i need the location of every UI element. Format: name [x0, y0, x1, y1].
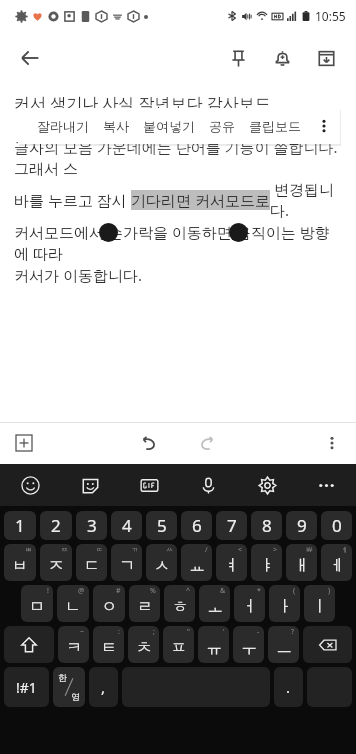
button[interactable]: -	[233, 626, 264, 663]
staticText: 2	[51, 514, 61, 537]
button[interactable]: Reminder	[260, 36, 304, 80]
staticText: ㄴ	[65, 597, 81, 617]
staticText: 기다리면 커서모드로	[131, 190, 270, 210]
staticText: %	[150, 586, 156, 596]
staticText: >	[273, 545, 278, 555]
button[interactable]: Undo	[131, 425, 167, 461]
button[interactable]: >	[251, 544, 282, 581]
button[interactable]: ㄸ	[76, 544, 107, 581]
button[interactable]: ,	[89, 667, 118, 707]
staticText: ㅋ	[66, 638, 82, 658]
staticText: ㅛ	[189, 556, 205, 576]
button[interactable]: ;	[128, 626, 159, 663]
button[interactable]: Emoji	[0, 464, 60, 506]
staticText: &	[220, 586, 226, 596]
staticText: ￦	[306, 545, 313, 554]
button[interactable]: '	[198, 626, 229, 663]
staticText: 공유	[209, 118, 235, 134]
button[interactable]: 클립보드	[249, 118, 301, 134]
staticText: ㅖ	[341, 545, 348, 554]
staticText: ㅌ	[101, 638, 117, 658]
staticText: "	[187, 627, 190, 637]
button[interactable]: ㅃ	[4, 544, 36, 581]
staticText: 복사	[103, 118, 129, 134]
button[interactable]: 3	[76, 511, 107, 540]
button[interactable]: Backspace	[303, 626, 352, 663]
button[interactable]: "	[163, 626, 194, 663]
button[interactable]: 붙여넣기	[143, 118, 195, 134]
staticText: 1	[15, 514, 25, 537]
button[interactable]: 2	[40, 511, 72, 540]
staticText: ?	[291, 627, 295, 637]
button[interactable]: 6	[181, 511, 212, 540]
button[interactable]: ￦	[286, 544, 317, 581]
button[interactable]: )	[304, 585, 335, 622]
button[interactable]: *	[234, 585, 265, 622]
staticText: 한	[58, 672, 67, 683]
staticText: ㅊ	[136, 638, 152, 658]
button[interactable]: Save	[304, 36, 348, 80]
button[interactable]: .	[274, 667, 303, 707]
button[interactable]: 8	[251, 511, 282, 540]
staticText: '	[223, 627, 225, 637]
button[interactable]: Redo	[189, 425, 225, 461]
button[interactable]: ㅖ	[321, 544, 352, 581]
button[interactable]: More	[314, 425, 350, 461]
button[interactable]: #	[93, 585, 125, 622]
button[interactable]: 9	[286, 511, 317, 540]
staticText: 커서 생기나 사실 작년보다 감사보드	[14, 92, 271, 114]
button[interactable]: More options	[308, 108, 340, 144]
button[interactable]: Korean English toggle	[53, 667, 85, 707]
button[interactable]: (	[269, 585, 300, 622]
button[interactable]: ㅉ	[40, 544, 72, 581]
button[interactable]: 5	[146, 511, 177, 540]
staticText: 변경됩니다.	[270, 179, 344, 220]
button[interactable]: Back	[8, 36, 52, 80]
button[interactable]: 복사	[103, 118, 129, 134]
staticText: ㄱ	[119, 556, 135, 576]
button[interactable]: Voice input	[179, 464, 238, 506]
staticText: !#1	[16, 678, 37, 697]
staticText: ㅗ	[207, 597, 223, 617]
button[interactable]: ^	[164, 585, 195, 622]
button[interactable]: ㅆ	[146, 544, 177, 581]
staticText: ^	[186, 586, 191, 596]
staticText: )	[328, 586, 331, 596]
button[interactable]: GIF	[120, 464, 179, 506]
staticText: ㅐ	[294, 556, 310, 576]
staticText: @	[78, 586, 85, 596]
button[interactable]: ~	[58, 626, 89, 663]
button[interactable]: ?	[268, 626, 299, 663]
button[interactable]: 7	[216, 511, 247, 540]
staticText: ~	[80, 627, 85, 637]
button[interactable]: Stickers	[60, 464, 120, 506]
button[interactable]: !	[21, 585, 53, 622]
button[interactable]: 잘라내기	[37, 118, 89, 134]
button[interactable]: @	[57, 585, 89, 622]
button[interactable]: &	[199, 585, 230, 622]
staticText: 3	[87, 514, 97, 537]
button[interactable]: More	[297, 464, 356, 506]
button[interactable]: Pin	[216, 36, 260, 80]
button[interactable]: !#1	[4, 667, 49, 707]
staticText: 9	[297, 514, 307, 537]
staticText: ㅡ	[276, 638, 292, 658]
staticText: 5	[157, 514, 167, 537]
button[interactable]: Shift	[4, 626, 54, 663]
button[interactable]: 공유	[209, 118, 235, 134]
button[interactable]: Keyboard settings	[238, 464, 297, 506]
button[interactable]: %	[129, 585, 160, 622]
button[interactable]: Insert	[6, 425, 42, 461]
staticText: ㅉ	[61, 545, 68, 554]
button[interactable]: ㄲ	[111, 544, 142, 581]
button[interactable]: /	[181, 544, 212, 581]
staticText: ㅏ	[277, 597, 293, 617]
button[interactable]: 0	[321, 511, 352, 540]
staticText: !	[47, 586, 49, 596]
button[interactable]: :	[93, 626, 124, 663]
button[interactable]: <	[216, 544, 247, 581]
button[interactable]: 1	[4, 511, 36, 540]
button[interactable]: 4	[111, 511, 142, 540]
